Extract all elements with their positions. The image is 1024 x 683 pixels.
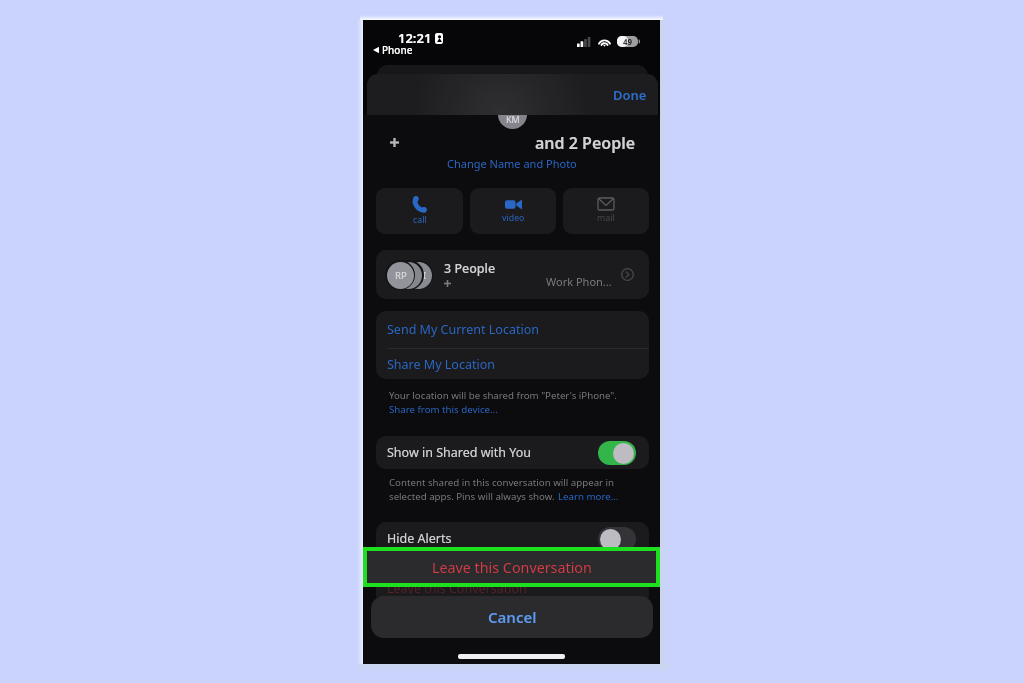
staticText: 49 xyxy=(623,36,633,47)
staticText: Done xyxy=(613,86,647,104)
button[interactable]: I xyxy=(376,250,649,299)
staticText: 3 People xyxy=(444,260,496,277)
button[interactable]: Add contact xyxy=(382,130,407,155)
staticText: video xyxy=(502,212,525,224)
button[interactable] xyxy=(598,441,636,465)
button[interactable]: Change Name and Photo xyxy=(441,153,583,174)
staticText: mail xyxy=(597,212,615,224)
staticText: call xyxy=(413,214,427,226)
button[interactable]: Send My Current Location xyxy=(376,311,649,348)
staticText: Show in Shared with You xyxy=(387,444,531,461)
staticText: Learn more... xyxy=(558,490,619,503)
staticText: Hide Alerts xyxy=(387,530,452,547)
button[interactable]: mail xyxy=(563,188,649,234)
staticText: Send My Current Location xyxy=(387,321,539,338)
button[interactable]: Leave this Conversation xyxy=(364,548,659,587)
button[interactable]: Cancel xyxy=(371,596,653,638)
staticText: Share from this device... xyxy=(389,403,498,416)
staticText: Your location will be shared from "Peter… xyxy=(389,389,617,402)
staticText: RP xyxy=(395,269,407,282)
button[interactable]: Share from this device... xyxy=(389,403,498,416)
staticText: Leave this Conversation xyxy=(387,580,527,597)
staticText: Share My Location xyxy=(387,356,495,373)
staticText: Content shared in this conversation will… xyxy=(389,476,615,489)
staticText: selected apps. Pins will always show. xyxy=(389,490,558,503)
staticText: and 2 People xyxy=(535,132,636,154)
staticText: 12:21 xyxy=(398,29,432,47)
staticText: Cancel xyxy=(488,607,537,627)
button[interactable]: Hide Alerts xyxy=(376,522,649,555)
button[interactable]: Done xyxy=(602,78,658,112)
staticText: KM xyxy=(506,115,520,125)
button[interactable]: video xyxy=(470,188,556,234)
staticText: Leave this Conversation xyxy=(432,558,592,577)
button[interactable]: call xyxy=(376,188,463,234)
staticText: I xyxy=(423,269,427,282)
button[interactable] xyxy=(598,527,636,551)
button[interactable]: Leave this Conversation xyxy=(376,572,649,605)
button[interactable]: Share My Location xyxy=(376,349,649,379)
button[interactable]: Show in Shared with You xyxy=(376,436,649,469)
staticText: Work Phon... xyxy=(546,274,612,289)
staticText: Phone xyxy=(382,43,413,57)
staticText: Change Name and Photo xyxy=(447,156,577,171)
